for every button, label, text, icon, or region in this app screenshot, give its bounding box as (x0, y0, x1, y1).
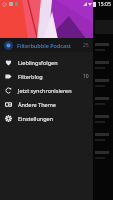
other: Lieblingsfolgen (5, 59, 12, 66)
other: Jetzt synchronisieren (5, 87, 12, 94)
button[interactable]: Einstellungen (0, 111, 93, 125)
staticText: Einstellungen (18, 115, 89, 122)
other: Ändere Theme (5, 101, 12, 108)
button[interactable]: Filterbubble Podcast (0, 38, 93, 52)
staticText: Filterbubble Podcast (17, 42, 83, 49)
button[interactable]: Lieblingsfolgen (0, 55, 93, 69)
staticText: Filterblog (18, 73, 83, 80)
other: Filterblog (5, 73, 12, 80)
staticText: Lieblingsfolgen (18, 59, 89, 66)
button[interactable]: Ändere Theme (0, 97, 93, 111)
button[interactable]: Jetzt synchronisieren (0, 83, 93, 97)
staticText: 15:05 (98, 1, 111, 8)
staticText: Jetzt synchronisieren (18, 87, 89, 94)
staticText: 25 (83, 42, 89, 49)
staticText: 10 (83, 73, 89, 80)
other: Einstellungen (5, 115, 12, 122)
button[interactable]: Filterblog (0, 69, 93, 83)
staticText: Ändere Theme (18, 101, 89, 108)
